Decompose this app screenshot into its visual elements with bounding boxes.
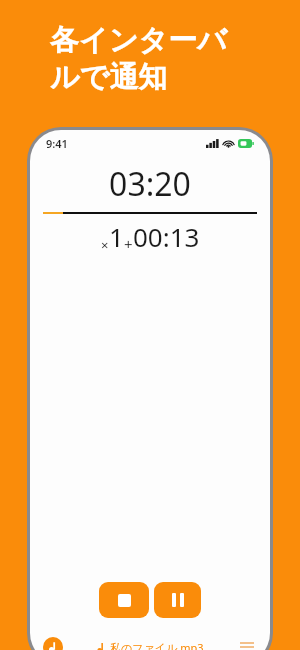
staticText: 03:20 — [109, 162, 191, 206]
staticText: 9:41 — [46, 136, 68, 151]
staticText: 1 — [109, 219, 124, 254]
button[interactable]: Stop — [99, 582, 149, 618]
staticText: × — [101, 236, 109, 254]
button[interactable]: Menu — [236, 636, 258, 650]
button[interactable]: Sound — [42, 636, 64, 650]
button[interactable]: Pause — [154, 582, 201, 618]
staticText: 私のファイル.mp3 — [110, 640, 204, 650]
staticText: 各インターバ — [50, 22, 227, 59]
staticText: ルで通知 — [50, 59, 168, 96]
staticText: 00:13 — [133, 219, 200, 254]
staticText: + — [124, 234, 133, 254]
